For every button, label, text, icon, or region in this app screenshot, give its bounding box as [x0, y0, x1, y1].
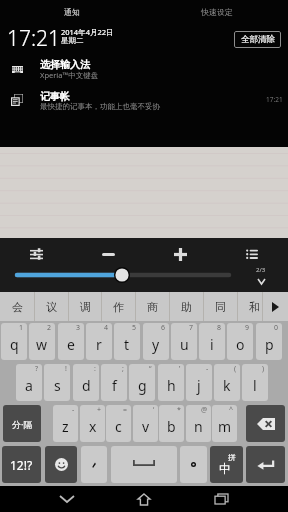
button[interactable]: Home [120, 486, 168, 512]
button[interactable]: @ [186, 405, 211, 442]
staticText: 通知 [64, 7, 80, 17]
button[interactable]: 9 [227, 323, 253, 360]
button[interactable]: Decrease size [96, 242, 120, 266]
staticText: 17:21 [7, 24, 61, 53]
button[interactable]: ; [101, 364, 127, 401]
button[interactable]: 调 [68, 292, 102, 321]
button[interactable]: 全部清除 [234, 31, 281, 48]
button[interactable]: Hide keyboard [43, 486, 91, 512]
button[interactable]: 分·隔 [3, 405, 41, 442]
button[interactable]: ( [214, 364, 240, 401]
staticText: : [94, 364, 96, 374]
button[interactable]: * [159, 405, 184, 442]
button[interactable]: 选择输入法 [0, 55, 288, 85]
staticText: ) [262, 364, 265, 374]
button[interactable]: 会 [0, 292, 34, 321]
staticText: 快速设定 [201, 7, 233, 17]
button[interactable]: 6 [143, 323, 169, 360]
button[interactable]: Period [180, 446, 207, 483]
button[interactable]: - [186, 364, 212, 401]
button[interactable]: “ [129, 364, 155, 401]
staticText: 17:21 [266, 95, 283, 104]
button[interactable]: 1 [1, 323, 27, 360]
staticText: 作 [113, 300, 124, 314]
button[interactable]: 记事帐 [0, 88, 288, 118]
button[interactable]: 8 [199, 323, 225, 360]
button[interactable]: 和 [237, 292, 271, 321]
staticText: 拼 [228, 453, 236, 462]
staticText: @ [201, 405, 208, 415]
staticText: 全部清除 [241, 34, 275, 45]
button[interactable]: 7 [171, 323, 197, 360]
button[interactable]: Backspace [246, 405, 285, 442]
staticText: b [167, 417, 176, 436]
button[interactable]: 4 [86, 323, 112, 360]
button[interactable]: 助 [169, 292, 203, 321]
button[interactable]: ‘ [133, 405, 158, 442]
staticText: 最快捷的记事本，功能上也毫不妥协 [40, 102, 160, 111]
staticText: x [89, 417, 97, 436]
button[interactable]: 商 [135, 292, 169, 321]
button[interactable]: ? [16, 364, 42, 401]
button[interactable]: ’ [158, 364, 184, 401]
button[interactable]: - [53, 405, 78, 442]
staticText: u [180, 335, 189, 354]
button[interactable]: 作 [101, 292, 135, 321]
staticText: n [194, 417, 203, 436]
button[interactable]: 2 [29, 323, 55, 360]
staticText: 0 [274, 323, 279, 333]
button[interactable]: Comma [81, 446, 107, 483]
button[interactable]: 3 [58, 323, 84, 360]
staticText: - [206, 364, 209, 374]
staticText: g [138, 376, 147, 395]
button[interactable]: : [73, 364, 99, 401]
staticText: - [72, 405, 75, 415]
staticText: * [177, 405, 181, 415]
staticText: d [82, 376, 91, 395]
button[interactable]: Increase size [168, 242, 192, 266]
staticText: e [67, 335, 75, 354]
button[interactable]: ! [44, 364, 70, 401]
staticText: ’ [179, 364, 181, 374]
button[interactable]: More candidates [263, 292, 288, 321]
staticText: 议 [46, 300, 57, 314]
button[interactable]: Enter [246, 446, 285, 483]
staticText: ‘ [153, 405, 155, 415]
staticText: 2/3 [256, 266, 266, 274]
button[interactable]: 同 [203, 292, 237, 321]
button[interactable]: = [106, 405, 131, 442]
staticText: q [10, 335, 19, 354]
staticText: 12!? [10, 457, 33, 473]
staticText: 2014年4月22日 [61, 27, 114, 37]
button[interactable]: Emoji [45, 446, 77, 483]
button[interactable]: 议 [34, 292, 68, 321]
staticText: a [25, 376, 33, 395]
staticText: 5 [132, 323, 137, 333]
staticText: 8 [217, 323, 222, 333]
staticText: 商 [147, 300, 158, 314]
staticText: r [96, 335, 102, 354]
staticText: i [210, 335, 214, 354]
button[interactable]: Input settings [24, 242, 48, 266]
staticText: 1 [19, 323, 24, 333]
button[interactable]: ^ [212, 405, 237, 442]
staticText: y [152, 335, 160, 354]
button[interactable]: 拼 [210, 446, 243, 483]
button[interactable]: 12!? [2, 446, 41, 483]
staticText: 中 [219, 461, 231, 476]
button[interactable]: + [80, 405, 105, 442]
button[interactable]: Next page [252, 274, 270, 288]
staticText: ? [35, 364, 39, 374]
staticText: 3 [76, 323, 81, 333]
staticText: j [197, 376, 201, 395]
staticText: ; [122, 364, 124, 374]
button[interactable]: 0 [256, 323, 282, 360]
button[interactable]: ) [242, 364, 268, 401]
button[interactable]: Recents [197, 486, 245, 512]
staticText: 2 [47, 323, 52, 333]
button[interactable]: Keyboard list [240, 242, 264, 266]
staticText: k [223, 376, 231, 395]
button[interactable]: 5 [114, 323, 140, 360]
button[interactable]: Space [111, 446, 177, 483]
staticText: + [97, 405, 102, 415]
